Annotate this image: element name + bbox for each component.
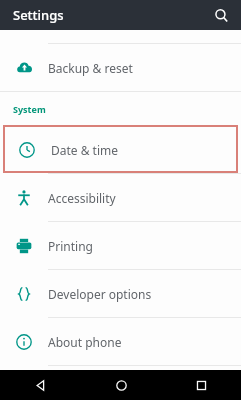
staticText: System: [13, 103, 46, 115]
staticText: Date & time: [51, 142, 119, 158]
button[interactable]: Date & time: [3, 125, 238, 173]
staticText: About phone: [48, 334, 122, 350]
staticText: Backup & reset: [48, 60, 133, 76]
button[interactable]: Printing: [0, 222, 241, 269]
button[interactable]: Accessibility: [0, 174, 241, 221]
button[interactable]: Recent apps: [161, 370, 241, 400]
button[interactable]: Back: [0, 370, 81, 400]
button[interactable]: Home: [81, 370, 161, 400]
button[interactable]: Search: [209, 3, 233, 27]
staticText: Printing: [48, 238, 93, 254]
staticText: Developer options: [48, 286, 152, 302]
staticText: Accessibility: [48, 190, 116, 206]
button[interactable]: Backup & reset: [0, 44, 241, 91]
button[interactable]: About phone: [0, 318, 241, 365]
staticText: Settings: [13, 6, 64, 24]
button[interactable]: Developer options: [0, 270, 241, 317]
